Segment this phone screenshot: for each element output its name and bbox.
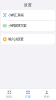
button[interactable]: 键盘 <box>0 88 19 100</box>
button[interactable]: 我的 <box>37 88 56 100</box>
button[interactable]: 小鹤双拼方案 <box>1 20 55 31</box>
staticText: 设置 <box>24 3 32 7</box>
staticText: 键盘 <box>6 95 12 98</box>
staticText: 输入法设置 <box>8 37 23 41</box>
staticText: 小鹤工具箱 <box>8 13 23 17</box>
button[interactable]: 方案 <box>19 88 37 100</box>
button[interactable]: 小鹤工具箱 <box>1 10 55 20</box>
staticText: 我的 <box>44 95 50 98</box>
staticText: 方案 <box>25 95 31 98</box>
staticText: 小鹤双拼方案 <box>8 23 26 28</box>
button[interactable]: 输入法设置 <box>1 34 55 44</box>
